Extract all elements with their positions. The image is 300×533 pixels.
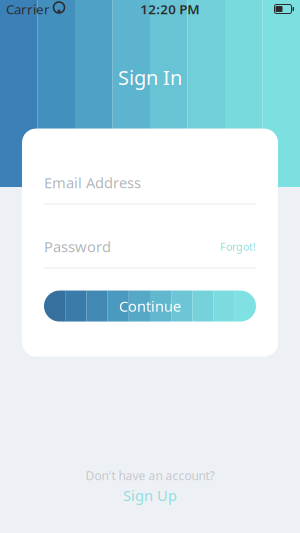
staticText: Sign Up <box>123 485 177 505</box>
staticText: 12:20 PM <box>140 0 199 18</box>
button[interactable]: Sign Up <box>123 485 177 505</box>
staticText: Carrier <box>6 0 50 18</box>
staticText: Email Address <box>44 173 141 192</box>
button[interactable]: Continue <box>44 291 256 322</box>
staticText: Continue <box>119 296 181 316</box>
staticText: Sign In <box>118 64 182 91</box>
button[interactable]: Forgot! <box>220 239 256 254</box>
staticText: Password <box>44 237 111 256</box>
staticText: Don't have an account? <box>85 468 214 483</box>
staticText <box>50 0 53 18</box>
staticText: Forgot! <box>220 239 256 254</box>
